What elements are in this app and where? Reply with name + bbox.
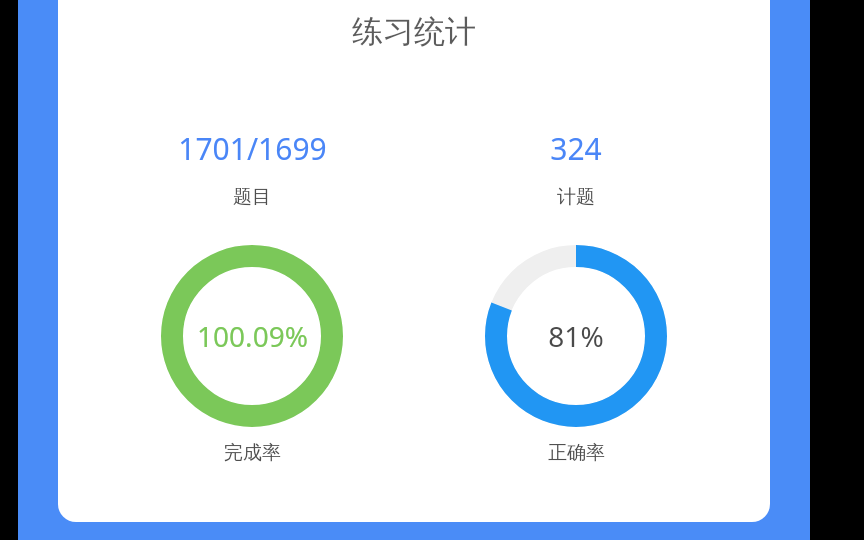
staticText: 81% xyxy=(548,317,604,355)
other: 完成率 xyxy=(159,243,345,429)
button[interactable]: 324 xyxy=(446,0,706,465)
other: 正确率 xyxy=(483,243,669,429)
staticText: 完成率 xyxy=(224,441,281,465)
staticText: 1701/1699 xyxy=(178,128,327,169)
button[interactable]: 练习统计 xyxy=(58,12,770,51)
staticText: 100.09% xyxy=(197,317,308,355)
button[interactable]: 1701/1699 xyxy=(122,0,382,465)
staticText: 题目 xyxy=(233,185,271,209)
staticText: 计题 xyxy=(557,185,595,209)
staticText: 练习统计 xyxy=(352,12,476,51)
staticText: 正确率 xyxy=(548,441,605,465)
staticText: 324 xyxy=(550,128,602,169)
